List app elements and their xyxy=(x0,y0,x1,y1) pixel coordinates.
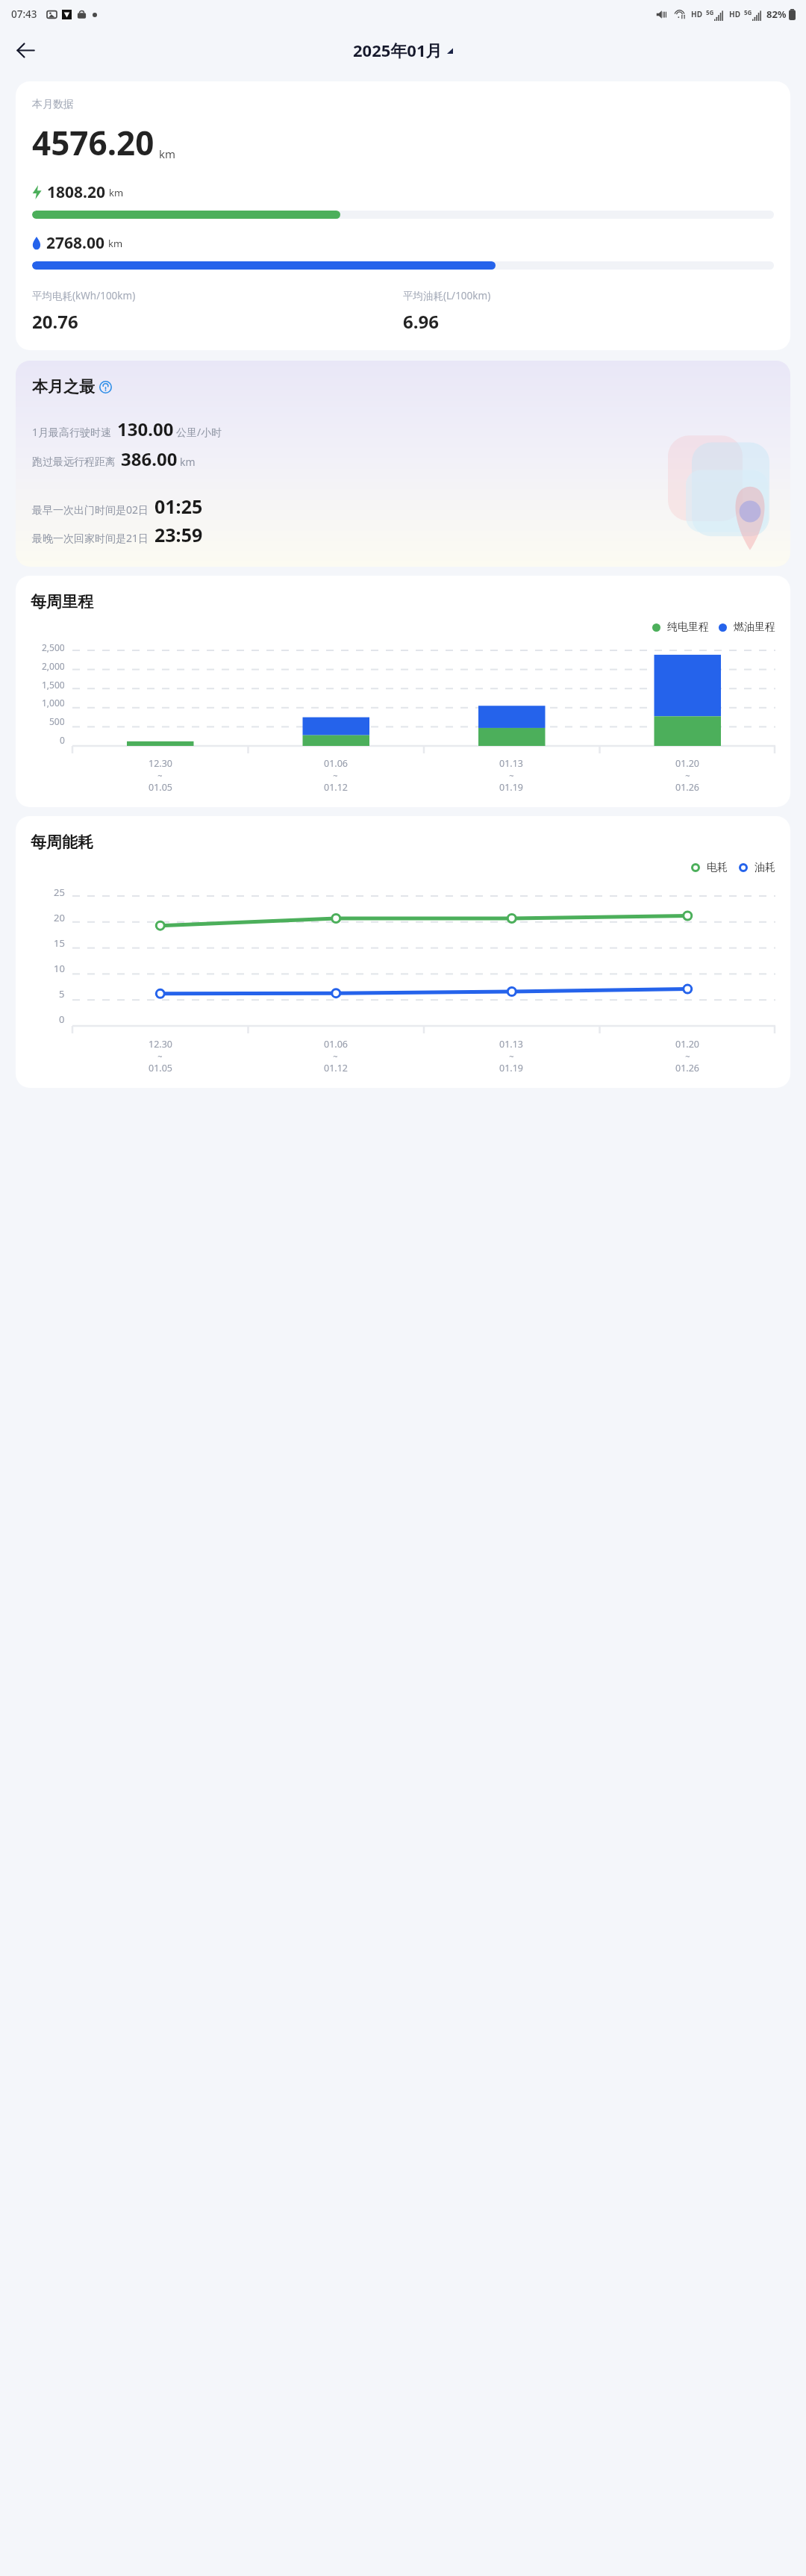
staticText: 01.20 xyxy=(675,1038,699,1051)
staticText: ~ xyxy=(333,770,338,781)
staticText: 最早一次出门时间是02日 xyxy=(32,503,149,517)
staticText: 01.26 xyxy=(675,1062,699,1074)
button[interactable]: 每周能耗 xyxy=(16,816,790,1088)
staticText: 平均油耗(L/100km) xyxy=(403,289,491,302)
staticText: 82% xyxy=(766,7,787,21)
staticText: 6.96 xyxy=(403,309,439,334)
staticText: km xyxy=(180,455,196,469)
staticText: ~ xyxy=(157,770,163,781)
staticText: 每周能耗 xyxy=(31,833,93,852)
staticText: 1,500 xyxy=(42,679,65,691)
staticText: 01.12 xyxy=(324,781,348,794)
staticText: 2025年01月 xyxy=(353,39,443,61)
button[interactable]: 2025年01月 xyxy=(353,39,453,61)
staticText: 15 xyxy=(54,936,65,950)
staticText: 01:25 xyxy=(154,494,203,519)
staticText: 01.13 xyxy=(499,1038,523,1051)
button[interactable]: 本月数据 xyxy=(16,81,790,350)
staticText: 01.19 xyxy=(499,781,523,794)
button[interactable]: 每周里程 xyxy=(16,576,790,807)
staticText: 公里/小时 xyxy=(176,425,222,439)
staticText: 电耗 xyxy=(707,861,728,874)
staticText: 01.26 xyxy=(675,781,699,794)
staticText: ~ xyxy=(157,1051,163,1062)
staticText: km xyxy=(108,237,123,250)
staticText: ~ xyxy=(333,1051,338,1062)
staticText: 20 xyxy=(54,911,65,924)
staticText: 本月数据 xyxy=(32,98,74,111)
staticText: 386.00 xyxy=(121,447,178,471)
staticText: 2768.00 xyxy=(46,232,104,254)
staticText: 01.12 xyxy=(324,1062,348,1074)
staticText: 01.06 xyxy=(324,757,348,770)
staticText: 500 xyxy=(49,715,65,727)
staticText: 23:59 xyxy=(154,522,203,547)
button[interactable]: Back xyxy=(7,32,43,68)
staticText: HD xyxy=(691,9,702,19)
staticText: 4576.20 xyxy=(32,120,154,165)
staticText: 1月最高行驶时速 xyxy=(32,425,112,439)
staticText: HD xyxy=(729,9,740,19)
staticText: 01.05 xyxy=(149,781,172,794)
staticText: 2,000 xyxy=(42,660,65,672)
staticText: ~ xyxy=(685,770,690,781)
staticText: 01.06 xyxy=(324,1038,348,1051)
staticText: 纯电里程 xyxy=(667,620,709,634)
staticText: 01.13 xyxy=(499,757,523,770)
staticText: km xyxy=(109,186,124,199)
staticText: 01.20 xyxy=(675,757,699,770)
staticText: 每周里程 xyxy=(31,592,93,612)
staticText: 平均电耗(kWh/100km) xyxy=(32,289,136,302)
staticText: ~ xyxy=(509,1051,514,1062)
staticText: 本月之最 xyxy=(32,377,95,396)
staticText: 20.76 xyxy=(32,309,78,334)
staticText: 0 xyxy=(59,1012,65,1026)
staticText: 5G xyxy=(744,8,752,16)
staticText: 1,000 xyxy=(42,697,65,709)
staticText: 07:43 xyxy=(11,7,37,21)
staticText: 5 xyxy=(59,987,65,1001)
staticText: 燃油里程 xyxy=(734,620,775,634)
staticText: km xyxy=(159,146,176,161)
staticText: ~ xyxy=(685,1051,690,1062)
button[interactable]: 本月之最 xyxy=(16,361,790,567)
staticText: 跑过最远行程距离 xyxy=(32,455,116,469)
staticText: 25 xyxy=(54,886,65,899)
staticText: 10 xyxy=(54,962,65,975)
staticText: 最晚一次回家时间是21日 xyxy=(32,531,149,545)
staticText: 12.30 xyxy=(149,1038,172,1051)
button[interactable]: Help xyxy=(99,381,112,393)
staticText: 5G xyxy=(706,8,714,16)
staticText: 12.30 xyxy=(149,757,172,770)
staticText: ~ xyxy=(509,770,514,781)
staticText: 0 xyxy=(60,734,65,746)
staticText: 油耗 xyxy=(755,861,775,874)
staticText: 130.00 xyxy=(117,417,174,441)
staticText: 01.05 xyxy=(149,1062,172,1074)
staticText: 2,500 xyxy=(42,641,65,653)
staticText: 1808.20 xyxy=(47,181,105,203)
staticText: 01.19 xyxy=(499,1062,523,1074)
